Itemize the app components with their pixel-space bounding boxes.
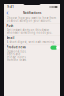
staticText: Occasional tips, offers and release note… [7,50,27,62]
button[interactable]: Back [4,10,11,16]
staticText: 9:41 [7,5,14,9]
staticText: Push [7,24,14,28]
staticText: Choose how you want to hear from us abou… [7,16,56,23]
button[interactable]: Product news [4,45,60,63]
staticText: Product news [7,45,26,49]
staticText: A short digest, sent each morning. [7,40,56,44]
staticText: Email [7,36,15,40]
staticText: Notifications [23,11,41,15]
staticText: Get instant alerts on this device whenev… [7,28,53,34]
